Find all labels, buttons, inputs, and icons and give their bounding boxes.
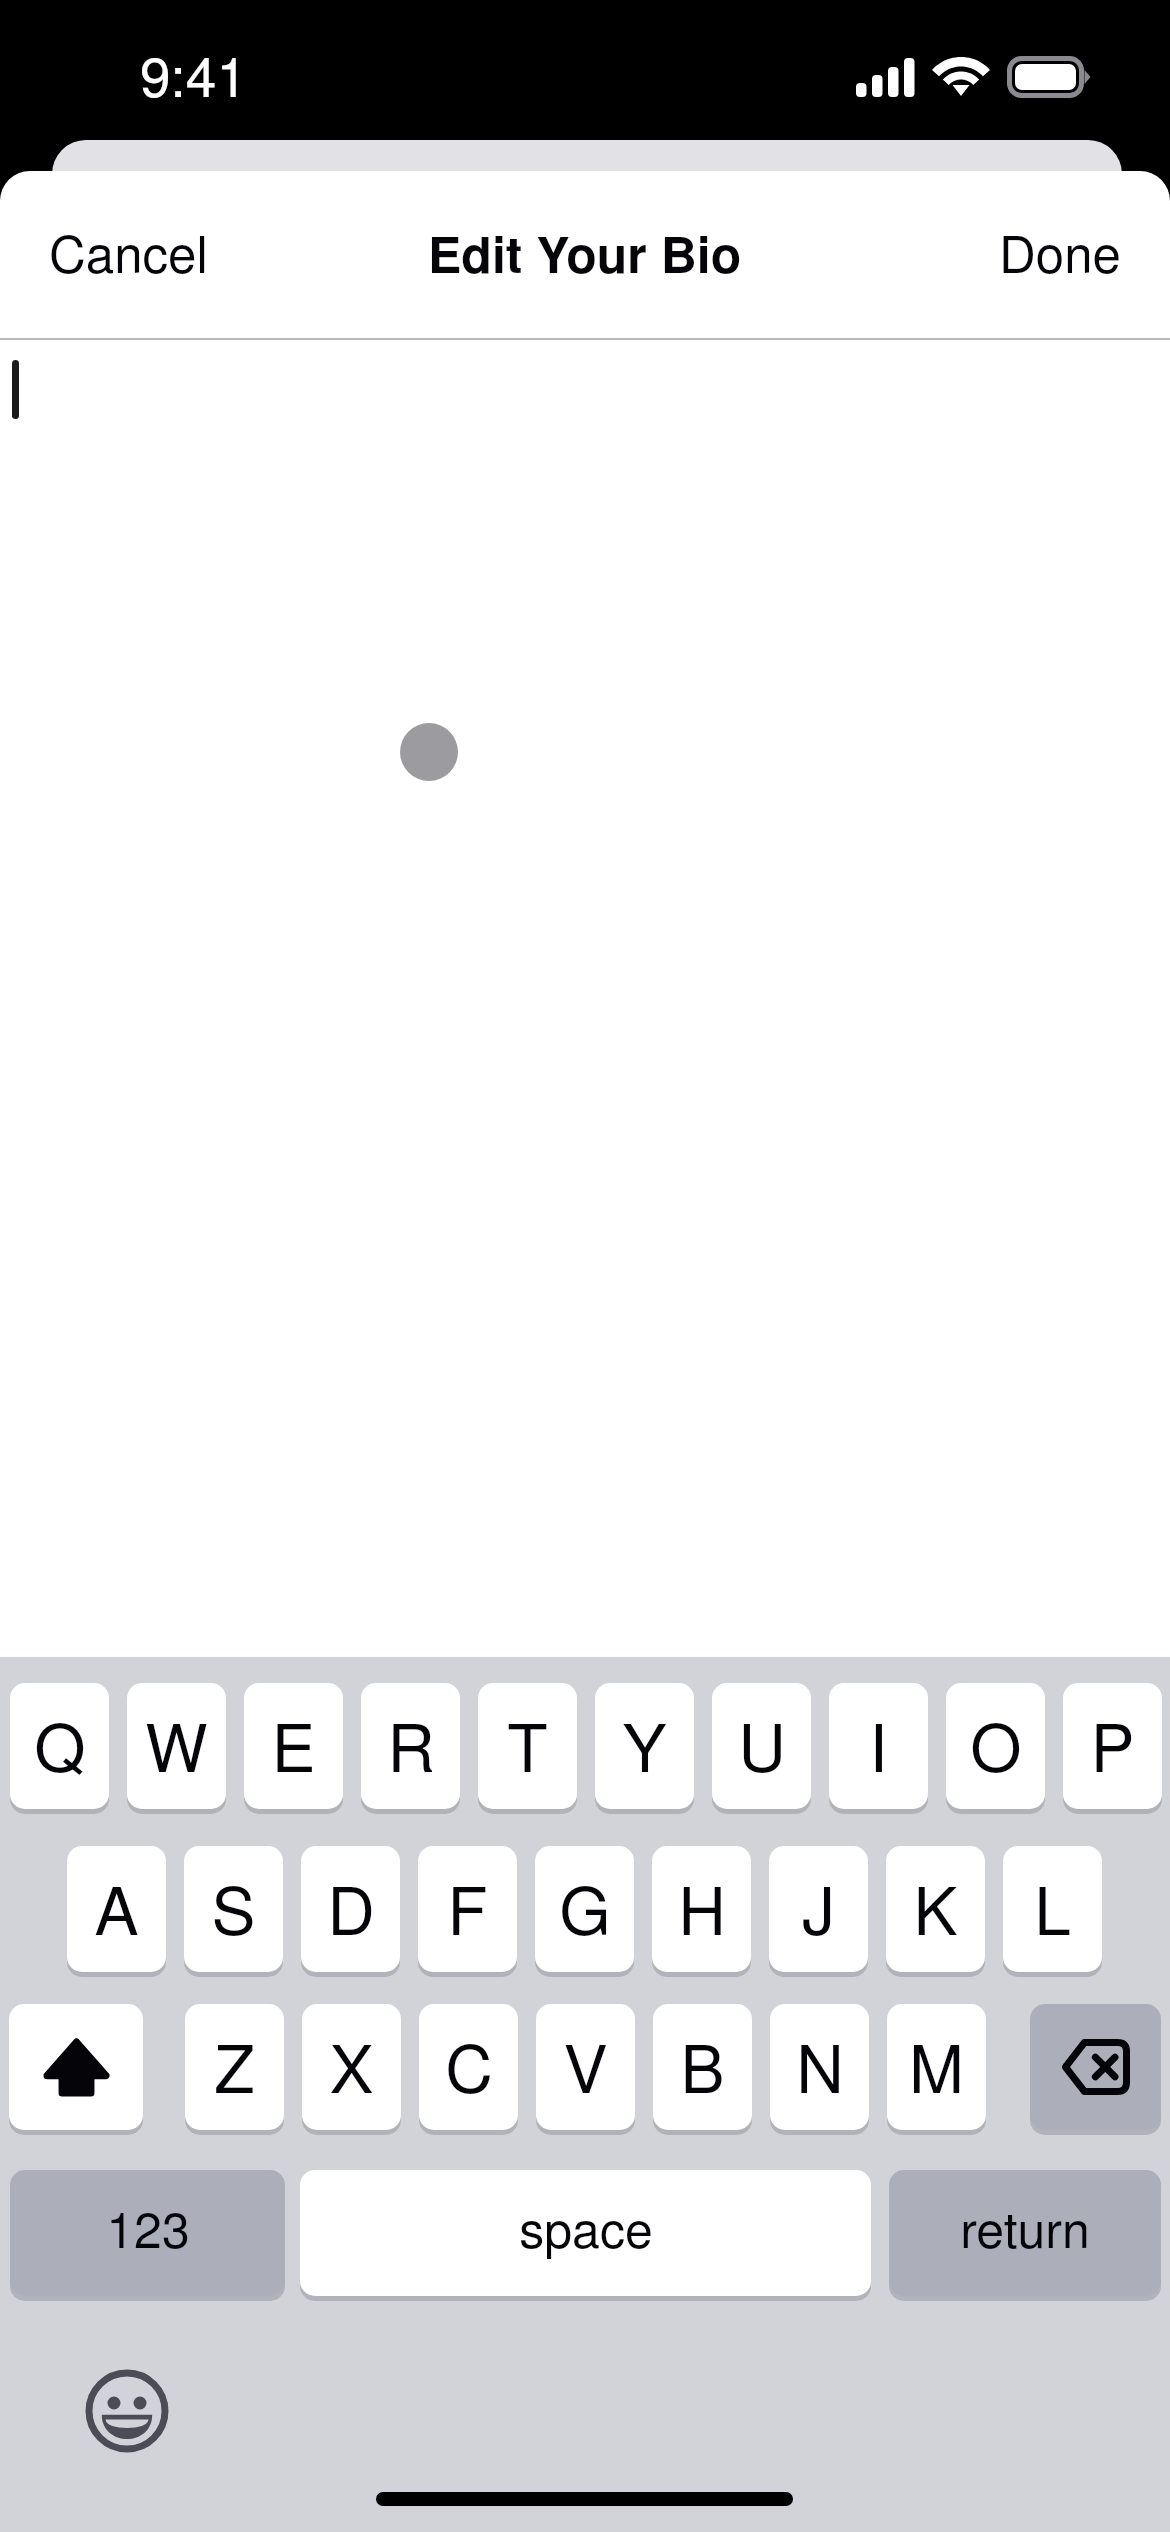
button[interactable]: Backspace [1030,2004,1161,2130]
staticText: Q [34,1696,86,1791]
button[interactable]: 123 [10,2170,285,2296]
button[interactable]: J [769,1846,868,1972]
button[interactable]: L [1003,1846,1102,1972]
button[interactable]: Y [595,1683,694,1809]
staticText: O [970,1696,1022,1791]
staticText: A [94,1859,139,1954]
button[interactable]: K [886,1846,985,1972]
button[interactable]: Cancel [0,184,257,317]
staticText: C [445,2017,493,2112]
staticText: Cancel [49,214,208,287]
staticText: R [387,1696,435,1791]
staticText: K [913,1859,958,1954]
button[interactable]: W [127,1683,226,1809]
button[interactable]: space [300,2170,871,2296]
staticText: L [1034,1859,1071,1954]
button[interactable]: P [1063,1683,1162,1809]
button[interactable]: A [67,1846,166,1972]
staticText: E [271,1696,316,1791]
staticText: V [563,2017,608,2112]
staticText: J [802,1859,835,1954]
button[interactable]: Emoji keyboard [85,2369,169,2453]
staticText: B [680,2017,725,2112]
button[interactable]: Q [10,1683,109,1809]
staticText: 9:41 [140,34,248,113]
button[interactable]: X [302,2004,401,2130]
staticText: M [909,2017,964,2112]
staticText: T [507,1696,548,1791]
button[interactable]: Done [950,184,1170,317]
button[interactable]: R [361,1683,460,1809]
staticText: H [678,1859,726,1954]
button[interactable]: C [419,2004,518,2130]
button[interactable]: E [244,1683,343,1809]
button[interactable]: S [184,1846,283,1972]
staticText: D [327,1859,375,1954]
staticText: return [960,2191,1090,2263]
button[interactable]: H [652,1846,751,1972]
staticText: I [869,1696,888,1791]
button[interactable]: G [535,1846,634,1972]
staticText: F [447,1859,488,1954]
staticText: Y [622,1696,667,1791]
staticText: 123 [106,2191,190,2263]
staticText: U [738,1696,786,1791]
staticText: Edit Your Bio [428,217,742,289]
button[interactable]: I [829,1683,928,1809]
button[interactable]: T [478,1683,577,1809]
staticText: Done [999,214,1121,287]
button[interactable]: Shift [9,2004,143,2130]
button[interactable]: M [887,2004,986,2130]
staticText: N [796,2017,844,2112]
button[interactable]: B [653,2004,752,2130]
staticText: G [559,1859,611,1954]
button[interactable]: F [418,1846,517,1972]
button[interactable]: return [889,2170,1161,2296]
button[interactable]: V [536,2004,635,2130]
button[interactable]: Z [185,2004,284,2130]
button[interactable]: D [301,1846,400,1972]
staticText: Z [214,2017,255,2112]
button[interactable]: U [712,1683,811,1809]
staticText: S [211,1859,256,1954]
button[interactable]: O [946,1683,1045,1809]
staticText: P [1090,1696,1135,1791]
staticText: X [329,2017,374,2112]
staticText: W [145,1696,208,1791]
staticText: space [519,2191,653,2263]
button[interactable]: N [770,2004,869,2130]
